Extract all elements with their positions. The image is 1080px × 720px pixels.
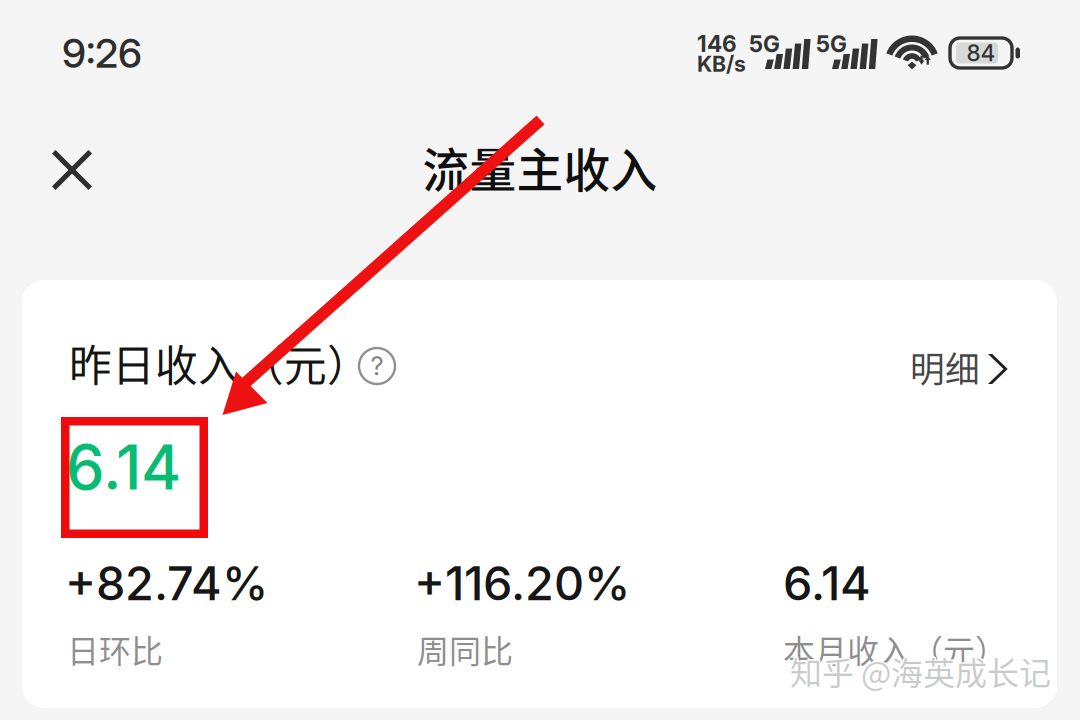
staticText: 知乎 @海英成长记 (791, 649, 1052, 695)
staticText: 84 (966, 39, 995, 67)
staticText: KB/s (697, 51, 746, 77)
staticText: 9:26 (62, 29, 142, 77)
staticText: +82.74% (65, 555, 268, 611)
staticText: 知乎 @海英成长记 (788, 648, 1049, 694)
staticText: 6.14 (66, 430, 181, 504)
staticText: 知乎 @海英成长记 (792, 648, 1053, 694)
staticText: 知乎 @海英成长记 (791, 647, 1052, 693)
staticText: 周同比 (417, 626, 513, 672)
button[interactable]: Close (28, 126, 116, 214)
staticText: 知乎 @海英成长记 (790, 650, 1051, 696)
staticText: 日环比 (67, 626, 163, 672)
staticText: 6.14 (783, 555, 871, 611)
staticText: 知乎 @海英成长记 (790, 646, 1051, 693)
staticText: +116.20% (414, 555, 630, 611)
staticText: 知乎 @海英成长记 (789, 647, 1050, 693)
staticText: 昨日收入（元） (69, 332, 370, 394)
staticText: 5G (749, 30, 780, 58)
staticText: 本月收入（元） (783, 626, 1007, 672)
staticText: 146 (697, 30, 737, 57)
staticText: 明细 (910, 342, 980, 392)
button[interactable]: About yesterday's income (349, 338, 405, 394)
staticText: ? (370, 351, 383, 381)
staticText: 5G (816, 30, 847, 58)
staticText: 知乎 @海英成长记 (790, 648, 1051, 694)
staticText: 知乎 @海英成长记 (789, 649, 1050, 695)
button[interactable]: 明细 (898, 332, 1028, 404)
staticText: 流量主收入 (422, 133, 657, 201)
